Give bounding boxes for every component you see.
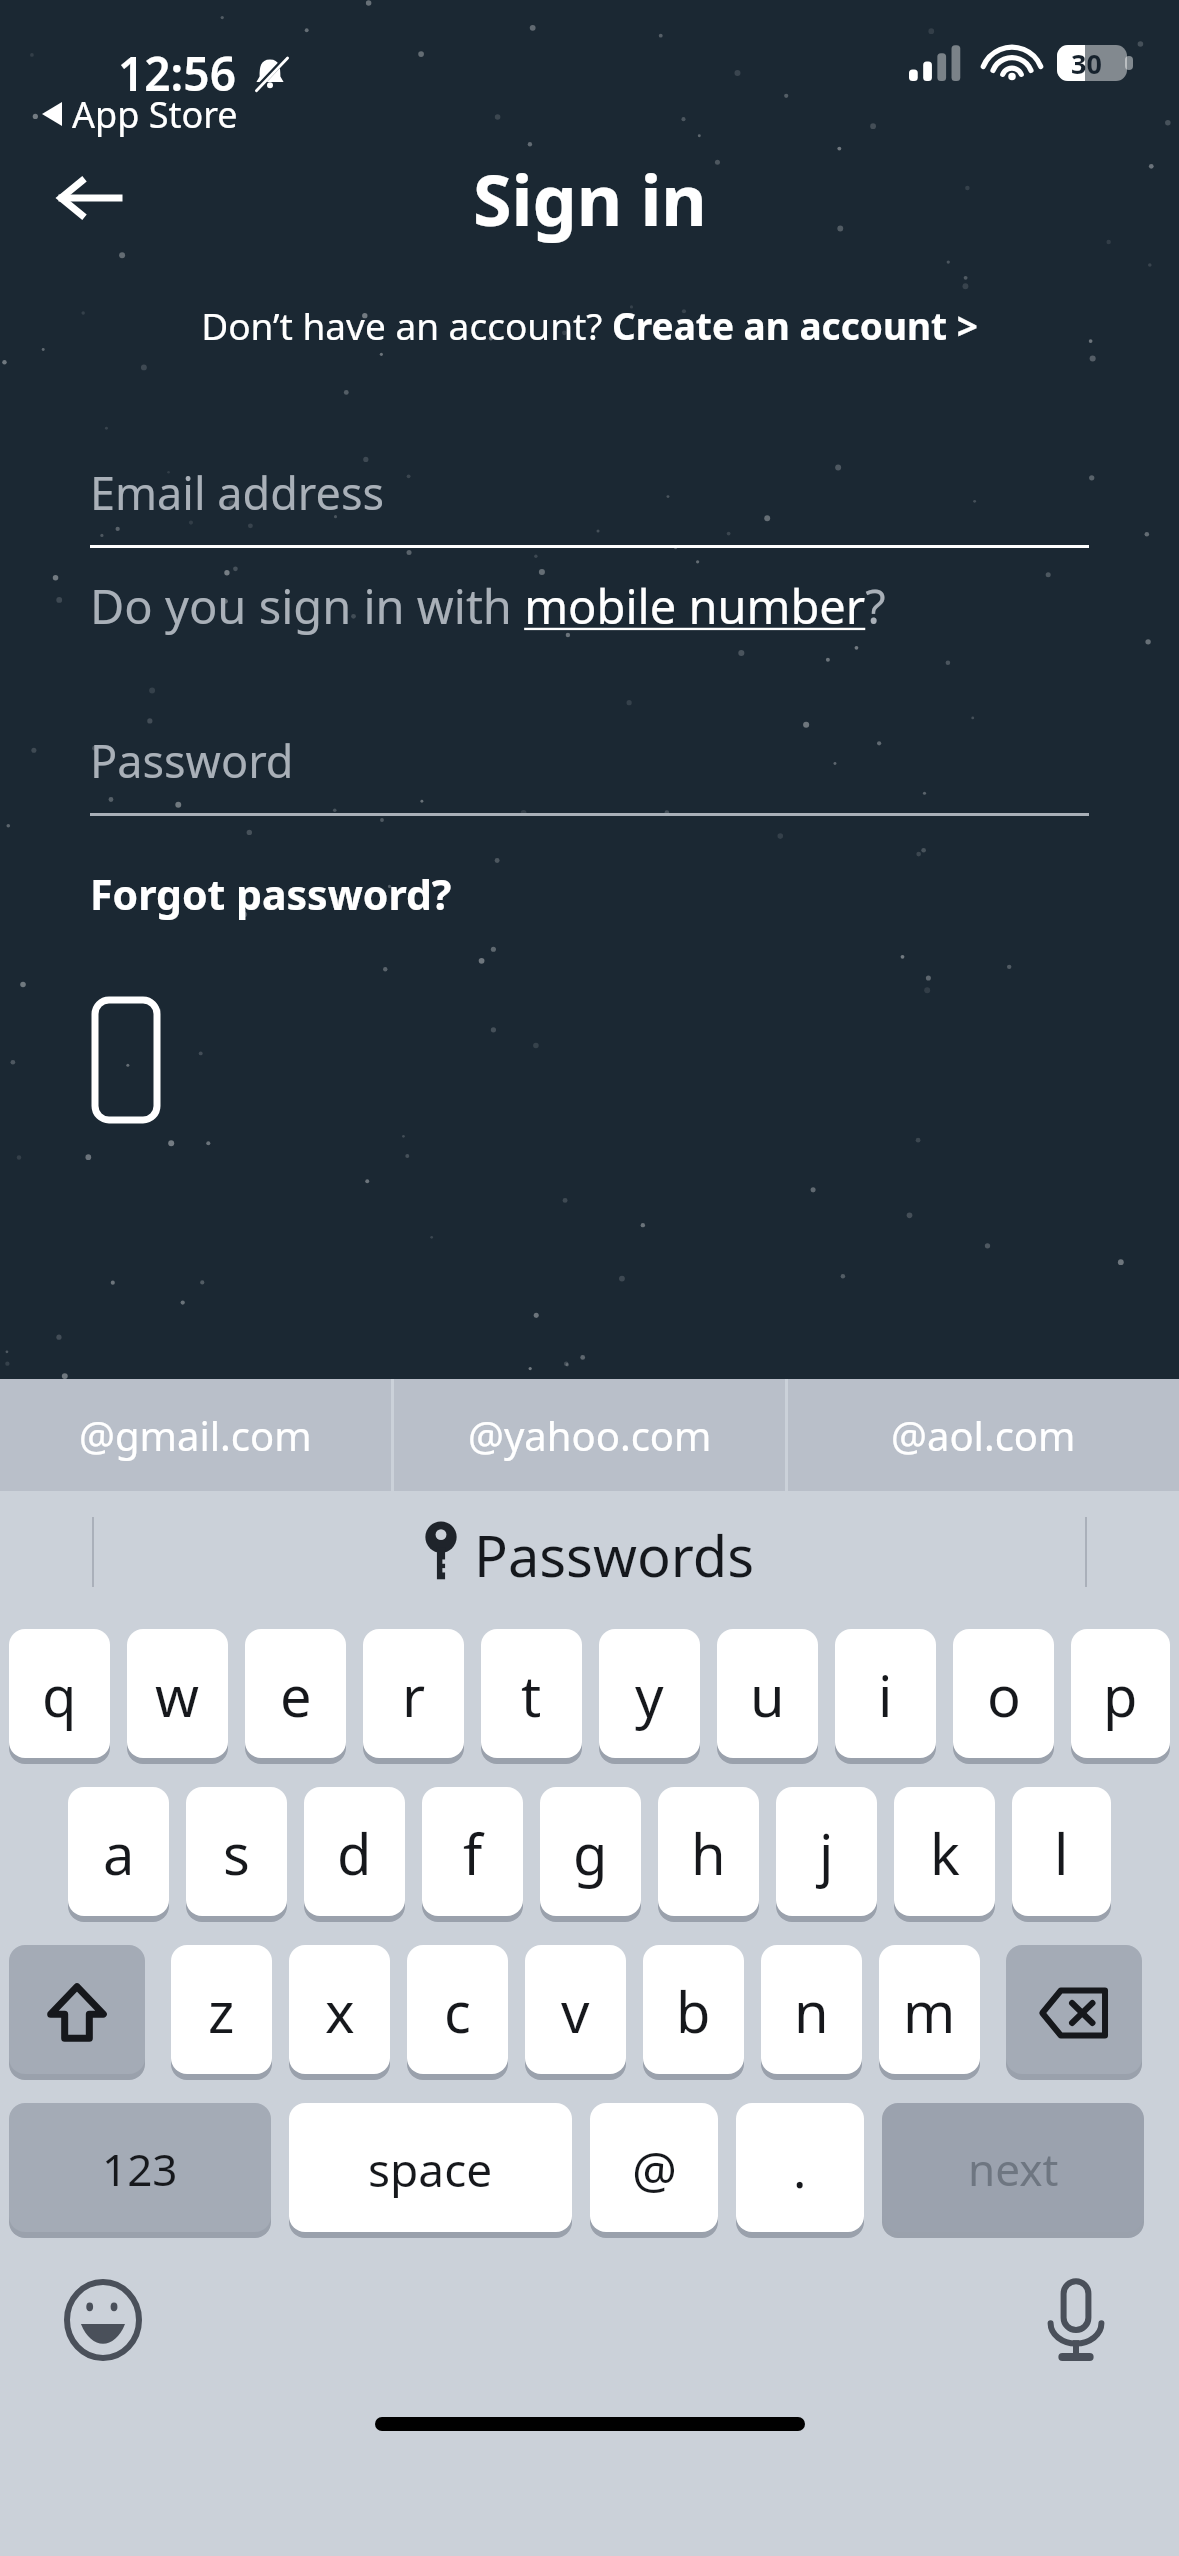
button[interactable]: @ <box>590 2103 718 2239</box>
button[interactable]: i <box>835 1629 936 1765</box>
button[interactable]: v <box>525 1945 626 2081</box>
staticText: l <box>1054 1815 1069 1891</box>
button[interactable]: d <box>304 1787 405 1923</box>
button[interactable]: k <box>894 1787 995 1923</box>
button[interactable]: space <box>289 2103 572 2239</box>
button[interactable]: g <box>540 1787 641 1923</box>
staticText: x <box>325 1973 355 2049</box>
staticText: j <box>819 1815 834 1891</box>
staticText: o <box>987 1657 1021 1733</box>
button[interactable]: n <box>761 1945 862 2081</box>
staticText: . <box>793 2135 807 2203</box>
staticText: Do you sign in with mobile number? <box>90 574 886 638</box>
staticText: k <box>930 1815 960 1891</box>
staticText: @yahoo.com <box>468 1408 712 1462</box>
button[interactable]: j <box>776 1787 877 1923</box>
staticText: Email address <box>90 462 385 523</box>
staticText: a <box>103 1815 135 1891</box>
button[interactable]: l <box>1012 1787 1111 1923</box>
staticText: 12:56 <box>118 42 236 105</box>
button[interactable]: e <box>245 1629 346 1765</box>
staticText: h <box>691 1815 726 1891</box>
staticText: 123 <box>102 2139 178 2199</box>
staticText: i <box>878 1657 893 1733</box>
staticText: @aol.com <box>891 1408 1076 1462</box>
staticText: p <box>1103 1657 1138 1733</box>
button[interactable]: . <box>736 2103 864 2239</box>
button[interactable]: @aol.com <box>788 1379 1179 1491</box>
staticText: next <box>968 2139 1059 2199</box>
button[interactable]: Don’t have an account? Create an account… <box>0 300 1179 350</box>
staticText: f <box>463 1815 483 1891</box>
staticText: z <box>208 1973 235 2049</box>
button[interactable]: u <box>717 1629 818 1765</box>
button[interactable]: Dictation <box>1031 2275 1121 2365</box>
staticText: App Store <box>72 90 238 138</box>
staticText: Sign in <box>473 151 707 246</box>
staticText: g <box>573 1815 608 1891</box>
button[interactable]: Email address <box>90 462 1089 548</box>
staticText: Forgot password? <box>90 866 452 922</box>
button[interactable]: a <box>68 1787 169 1923</box>
button[interactable]: o <box>953 1629 1054 1765</box>
button[interactable]: z <box>171 1945 272 2081</box>
staticText: c <box>444 1973 471 2049</box>
staticText: n <box>794 1973 829 2049</box>
staticText: d <box>337 1815 372 1891</box>
button[interactable]: @yahoo.com <box>394 1379 785 1491</box>
button[interactable]: @gmail.com <box>0 1379 391 1491</box>
button[interactable]: h <box>658 1787 759 1923</box>
staticText: w <box>155 1657 200 1733</box>
staticText: 30 <box>1071 45 1102 82</box>
button[interactable]: Back <box>34 143 144 253</box>
staticText: b <box>676 1973 711 2049</box>
button[interactable]: x <box>289 1945 390 2081</box>
staticText: @gmail.com <box>79 1408 312 1462</box>
button[interactable]: r <box>363 1629 464 1765</box>
button[interactable]: Passwords <box>424 1517 755 1587</box>
button[interactable]: s <box>186 1787 287 1923</box>
button[interactable]: 123 <box>9 2103 271 2239</box>
button[interactable]: m <box>879 1945 980 2081</box>
staticText: u <box>750 1657 785 1733</box>
staticText: @ <box>632 2135 677 2203</box>
staticText: r <box>402 1657 426 1733</box>
button[interactable]: Shift <box>9 1945 145 2081</box>
staticText: e <box>280 1657 312 1733</box>
button[interactable]: Do you sign in with mobile number? <box>90 574 1089 638</box>
staticText: space <box>368 2138 493 2201</box>
button[interactable]: b <box>643 1945 744 2081</box>
button[interactable]: w <box>127 1629 228 1765</box>
staticText: q <box>42 1657 77 1733</box>
button[interactable]: c <box>407 1945 508 2081</box>
staticText: v <box>561 1973 590 2049</box>
staticText: Password <box>90 730 294 791</box>
staticText: m <box>903 1973 956 2049</box>
button[interactable]: Backspace <box>1006 1945 1142 2081</box>
button[interactable]: Forgot password? <box>90 866 452 922</box>
staticText: Passwords <box>474 1517 755 1587</box>
staticText: s <box>223 1815 250 1891</box>
button[interactable]: next <box>882 2103 1144 2239</box>
button[interactable]: Emoji keyboard <box>58 2275 148 2365</box>
staticText: y <box>635 1657 664 1733</box>
staticText: Don’t have an account? Create an account… <box>201 300 978 350</box>
button[interactable]: f <box>422 1787 523 1923</box>
button[interactable]: t <box>481 1629 582 1765</box>
button[interactable]: p <box>1071 1629 1170 1765</box>
button[interactable]: Password <box>90 730 1089 816</box>
button[interactable]: q <box>9 1629 110 1765</box>
button[interactable]: y <box>599 1629 700 1765</box>
staticText: t <box>521 1657 542 1733</box>
